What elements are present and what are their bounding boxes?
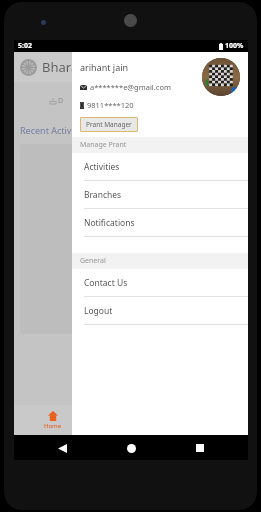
staticText: 9811****120 [87,100,134,110]
staticText: Branches [84,189,122,201]
staticText: Home [44,422,62,430]
button[interactable]: Logout [72,297,248,325]
staticText: Sans [222,318,238,328]
button[interactable]: Branches [72,181,248,209]
staticText: Prant Manager [86,120,132,129]
button[interactable]: Home [121,438,141,458]
staticText: 100% [225,41,244,51]
staticText: Contact Us [84,277,128,289]
button[interactable]: Profile photo [202,58,240,96]
staticText: Bharat [42,58,83,76]
staticText: a*******e@gmail.com [90,82,171,92]
button[interactable]: Notifications [72,209,248,237]
staticText: 5:02 [18,41,32,51]
staticText: Activities [84,161,120,173]
button[interactable]: Recents [190,438,210,458]
staticText: arihant jain [80,61,129,73]
button[interactable]: Home [14,405,92,435]
staticText: Logout [84,305,113,317]
button[interactable]: Prant Manager [80,117,138,132]
button[interactable]: Contact Us [72,269,248,297]
staticText: Recent Activit [20,124,78,136]
staticText: Manage Prant [80,140,127,150]
staticText: D [58,96,64,106]
staticText: Notifications [84,217,135,229]
button[interactable]: Activities [72,153,248,181]
button[interactable]: Back [52,438,72,458]
staticText: General [80,256,106,266]
